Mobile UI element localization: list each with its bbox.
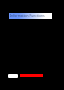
button[interactable]: Chip xyxy=(8,74,18,78)
staticText: Information Functions xyxy=(10,13,45,17)
button[interactable]: Information Functions xyxy=(9,13,52,19)
